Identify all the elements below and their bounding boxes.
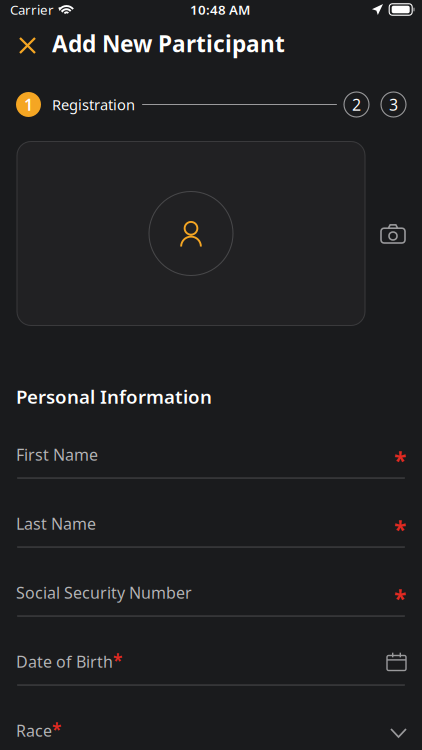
staticText: * bbox=[52, 718, 61, 741]
staticText: Personal Information bbox=[16, 384, 212, 409]
staticText: Social Security Number bbox=[16, 582, 192, 603]
staticText: Carrier bbox=[10, 1, 54, 18]
staticText: * bbox=[394, 514, 406, 544]
button[interactable]: First Name bbox=[0, 409, 422, 478]
button[interactable]: Take photo bbox=[376, 216, 410, 250]
staticText: * bbox=[394, 583, 406, 613]
staticText: Add New Participant bbox=[52, 28, 285, 58]
button[interactable]: Social Security Number bbox=[0, 547, 422, 616]
button[interactable]: Close bbox=[10, 28, 45, 63]
button[interactable]: Last Name bbox=[0, 478, 422, 547]
staticText: Registration bbox=[52, 95, 135, 114]
button[interactable]: Race bbox=[0, 685, 422, 750]
staticText: First Name bbox=[16, 444, 98, 465]
staticText: Date of Birth bbox=[16, 651, 113, 672]
staticText: * bbox=[394, 445, 406, 475]
staticText: Last Name bbox=[16, 513, 96, 534]
staticText: Race bbox=[16, 720, 52, 741]
button[interactable]: Date of Birth bbox=[0, 616, 422, 685]
staticText: 2 bbox=[352, 94, 361, 115]
staticText: 1 bbox=[24, 94, 33, 115]
staticText: * bbox=[113, 649, 122, 672]
staticText: 10:48 AM bbox=[190, 1, 250, 18]
staticText: 3 bbox=[389, 94, 398, 115]
